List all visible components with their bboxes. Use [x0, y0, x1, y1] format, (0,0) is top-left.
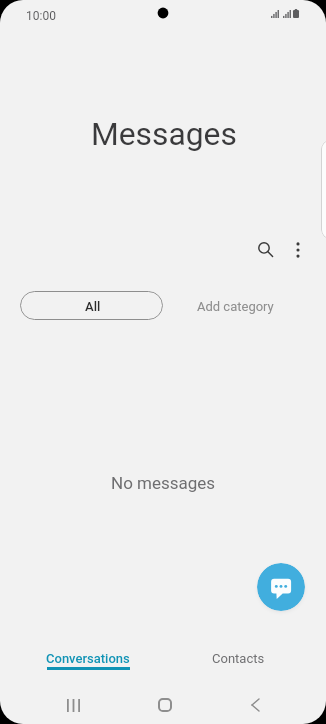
button[interactable]: All — [20, 291, 163, 320]
button[interactable]: Contacts — [163, 642, 313, 678]
staticText: No messages — [111, 473, 216, 493]
button[interactable]: Add category — [197, 292, 274, 321]
button[interactable]: Home — [145, 686, 185, 724]
button[interactable]: Search — [245, 229, 286, 270]
button[interactable]: Recent apps — [53, 686, 93, 724]
staticText: Messages — [91, 115, 237, 152]
staticText: 10:00 — [26, 9, 56, 23]
staticText: Add category — [197, 299, 274, 314]
button[interactable]: More options — [277, 229, 318, 270]
staticText: Contacts — [212, 651, 265, 666]
button[interactable]: Conversations — [13, 642, 163, 678]
staticText: All — [85, 299, 101, 314]
button[interactable]: Start new conversation — [257, 563, 305, 611]
staticText: Conversations — [46, 651, 130, 666]
button[interactable]: Back — [235, 686, 275, 724]
